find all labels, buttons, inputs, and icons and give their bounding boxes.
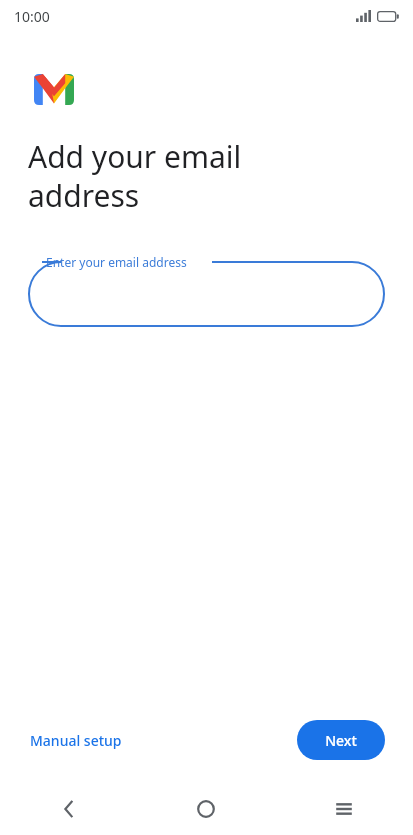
staticText: Enter your email address xyxy=(46,254,187,270)
button[interactable]: Back xyxy=(0,782,137,835)
button[interactable]: Home xyxy=(137,782,275,835)
button[interactable]: Recent apps xyxy=(275,782,413,835)
staticText: Manual setup xyxy=(30,731,122,750)
button[interactable]: Manual setup xyxy=(28,725,124,756)
staticText: Next xyxy=(325,731,357,750)
staticText: 10:00 xyxy=(14,7,50,26)
button[interactable]: Next xyxy=(297,720,385,760)
button[interactable]: Enter your email address xyxy=(28,261,385,327)
staticText: Add your email address xyxy=(28,136,242,215)
